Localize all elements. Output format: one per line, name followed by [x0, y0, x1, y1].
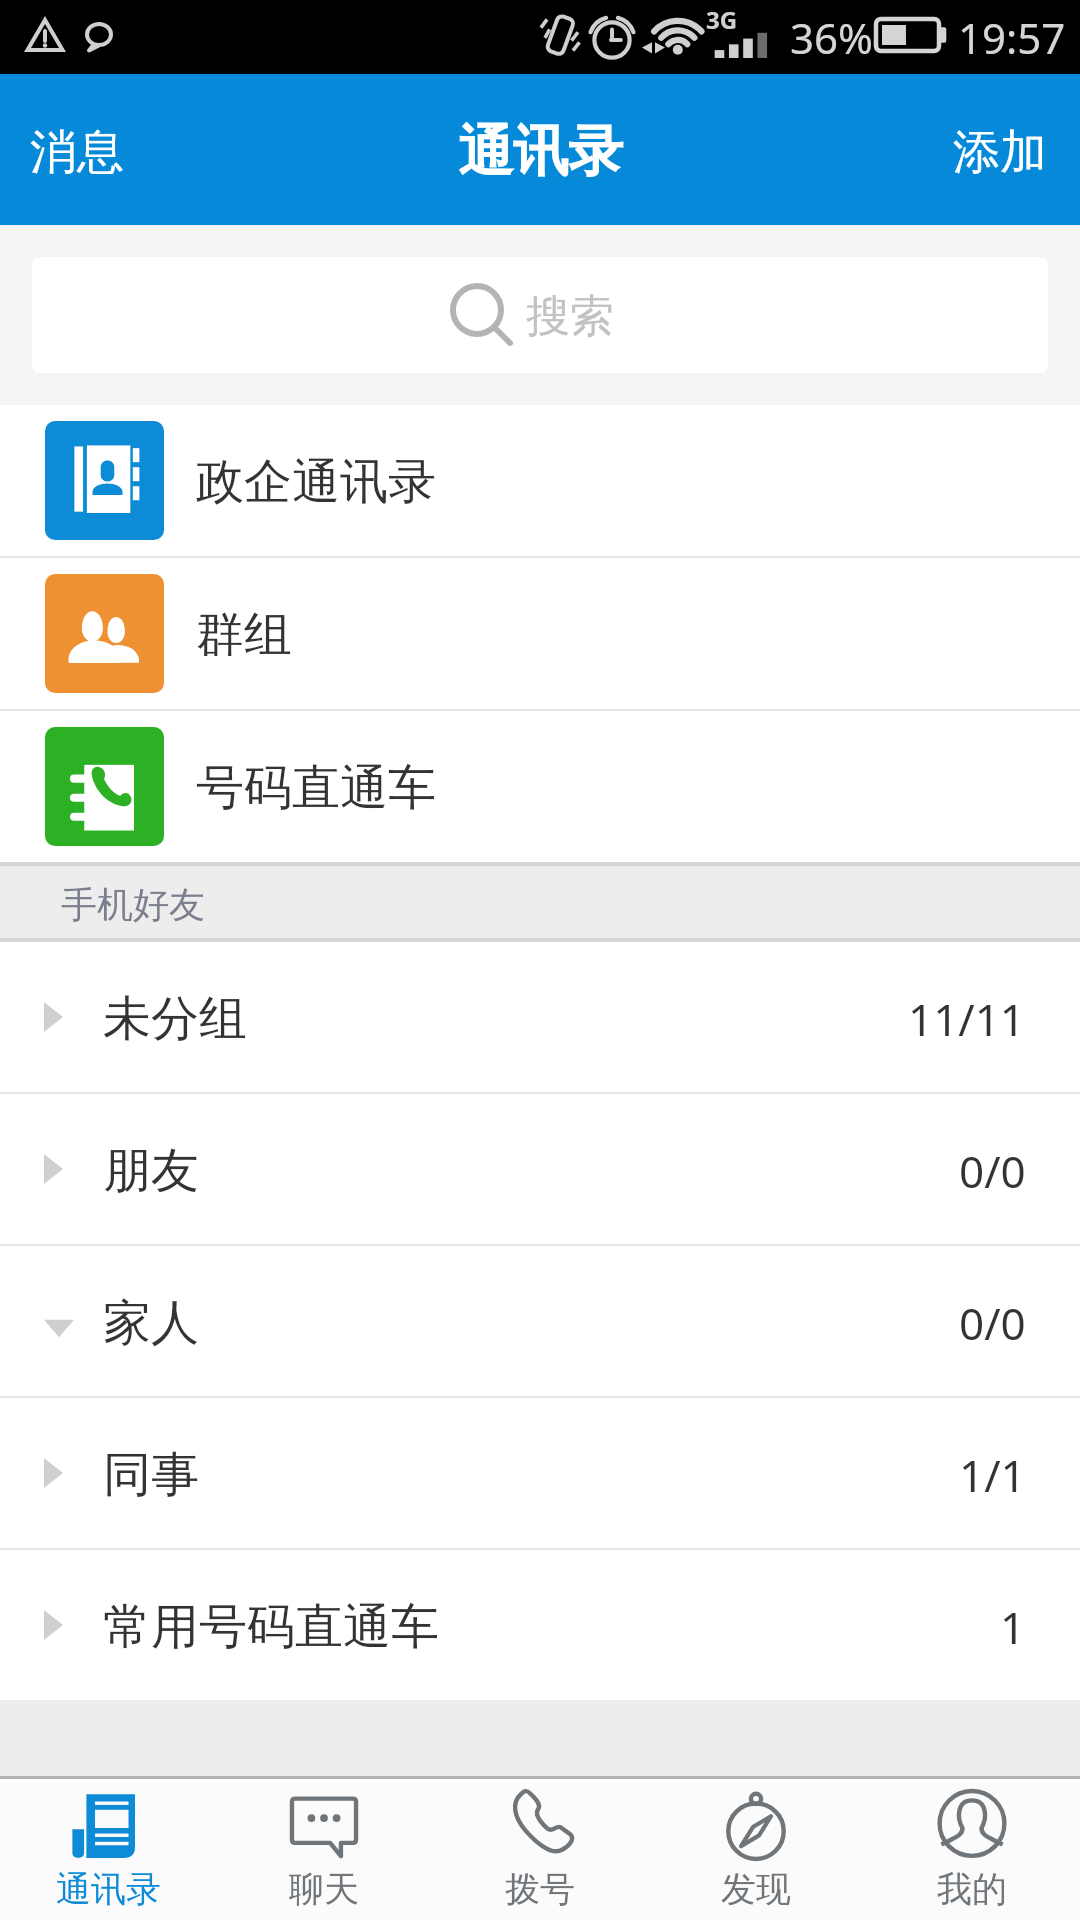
- staticText: 朋友: [103, 1141, 199, 1201]
- staticText: 同事: [103, 1445, 199, 1505]
- button[interactable]: 号码直通车: [0, 711, 1080, 862]
- button[interactable]: 政企通讯录: [0, 405, 1080, 556]
- staticText: 11/11: [908, 989, 1026, 1049]
- staticText: 0/0: [959, 1293, 1026, 1353]
- staticText: 通讯录: [56, 1867, 161, 1911]
- button[interactable]: 同事: [0, 1398, 1080, 1548]
- button[interactable]: 家人: [0, 1246, 1080, 1396]
- staticText: 政企通讯录: [196, 452, 436, 512]
- staticText: 通讯录: [458, 117, 623, 186]
- button[interactable]: Chat: [216, 1782, 432, 1920]
- button[interactable]: 群组: [0, 558, 1080, 709]
- staticText: 3G: [706, 3, 738, 36]
- button[interactable]: Me: [864, 1782, 1080, 1920]
- button[interactable]: Dial: [432, 1782, 648, 1920]
- staticText: 聊天: [289, 1867, 359, 1911]
- staticText: 常用号码直通车: [103, 1597, 439, 1657]
- button[interactable]: 添加: [913, 74, 1080, 225]
- staticText: 我的: [937, 1867, 1007, 1911]
- staticText: 搜索: [526, 289, 614, 344]
- staticText: 号码直通车: [196, 758, 436, 818]
- button[interactable]: Contacts: [0, 1782, 216, 1920]
- staticText: 1: [1000, 1597, 1026, 1657]
- staticText: 未分组: [103, 989, 247, 1049]
- button[interactable]: 常用号码直通车: [0, 1550, 1080, 1700]
- staticText: 手机好友: [61, 882, 205, 927]
- staticText: 添加: [953, 123, 1047, 182]
- button[interactable]: 未分组: [0, 942, 1080, 1092]
- button[interactable]: 朋友: [0, 1094, 1080, 1244]
- button[interactable]: Discover: [648, 1782, 864, 1920]
- button[interactable]: 搜索: [32, 257, 1048, 373]
- staticText: 拨号: [505, 1867, 575, 1911]
- staticText: 36%: [790, 9, 873, 66]
- staticText: 19:57: [958, 9, 1066, 66]
- staticText: 发现: [721, 1867, 791, 1911]
- staticText: 1/1: [959, 1445, 1026, 1505]
- staticText: 家人: [103, 1293, 199, 1353]
- staticText: 0/0: [959, 1141, 1026, 1201]
- staticText: 消息: [30, 123, 124, 182]
- staticText: 群组: [196, 605, 292, 665]
- button[interactable]: 消息: [0, 74, 164, 225]
